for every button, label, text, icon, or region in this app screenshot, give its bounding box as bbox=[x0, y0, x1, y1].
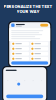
button[interactable]: Writing tool bbox=[30, 47, 48, 51]
button[interactable]: Upgrade bbox=[40, 24, 48, 27]
button[interactable]: Writing tool bbox=[11, 52, 29, 56]
button[interactable]: Continue bbox=[3, 95, 46, 98]
button[interactable]: Writing tool bbox=[11, 42, 29, 46]
staticText: YOUR WAY bbox=[16, 9, 39, 14]
staticText: PERSONALIZE THE TEXT bbox=[3, 4, 52, 9]
button[interactable]: Writing tool bbox=[30, 57, 48, 61]
button[interactable]: Writing tool bbox=[11, 57, 29, 61]
button[interactable]: Rewrite bbox=[9, 61, 50, 65]
button[interactable]: Writing tool bbox=[11, 47, 29, 51]
button[interactable]: Writing tool bbox=[30, 42, 48, 46]
button[interactable]: Writing tool bbox=[30, 52, 48, 56]
